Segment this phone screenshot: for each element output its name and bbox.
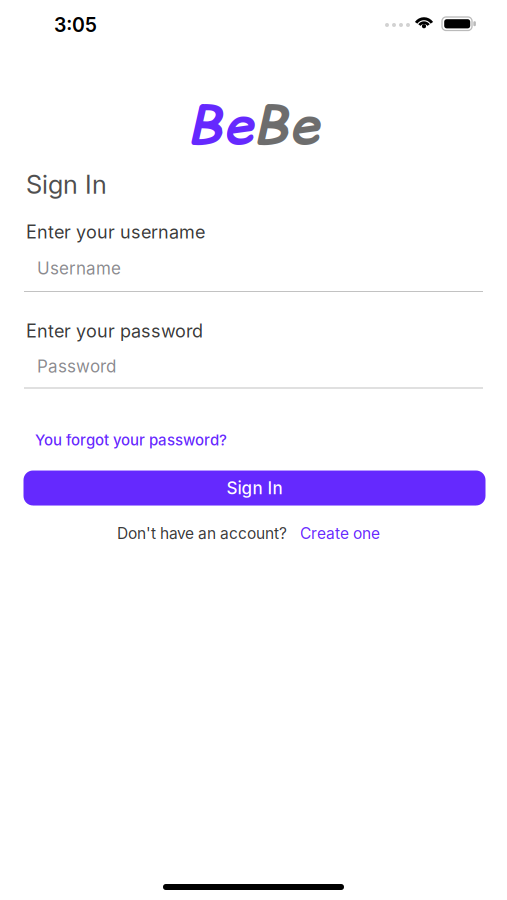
button[interactable]: Username (24, 257, 483, 292)
button[interactable]: Password (24, 353, 483, 388)
staticText: Sign In (226, 478, 282, 498)
staticText: Password (37, 356, 116, 377)
staticText: Be (187, 87, 253, 162)
staticText: You forgot your password? (35, 431, 227, 449)
staticText: Be (253, 87, 319, 162)
staticText: Create one (300, 524, 380, 543)
staticText: 3:05 (54, 13, 97, 37)
staticText: Enter your password (26, 320, 203, 342)
button[interactable]: You forgot your password? (35, 431, 227, 449)
staticText: Enter your username (26, 221, 205, 243)
button[interactable]: Sign In (23, 470, 485, 505)
staticText: Sign In (26, 169, 107, 200)
button[interactable]: Create one (300, 524, 380, 543)
staticText: Don't have an account? (117, 524, 287, 543)
staticText: Username (37, 258, 121, 279)
